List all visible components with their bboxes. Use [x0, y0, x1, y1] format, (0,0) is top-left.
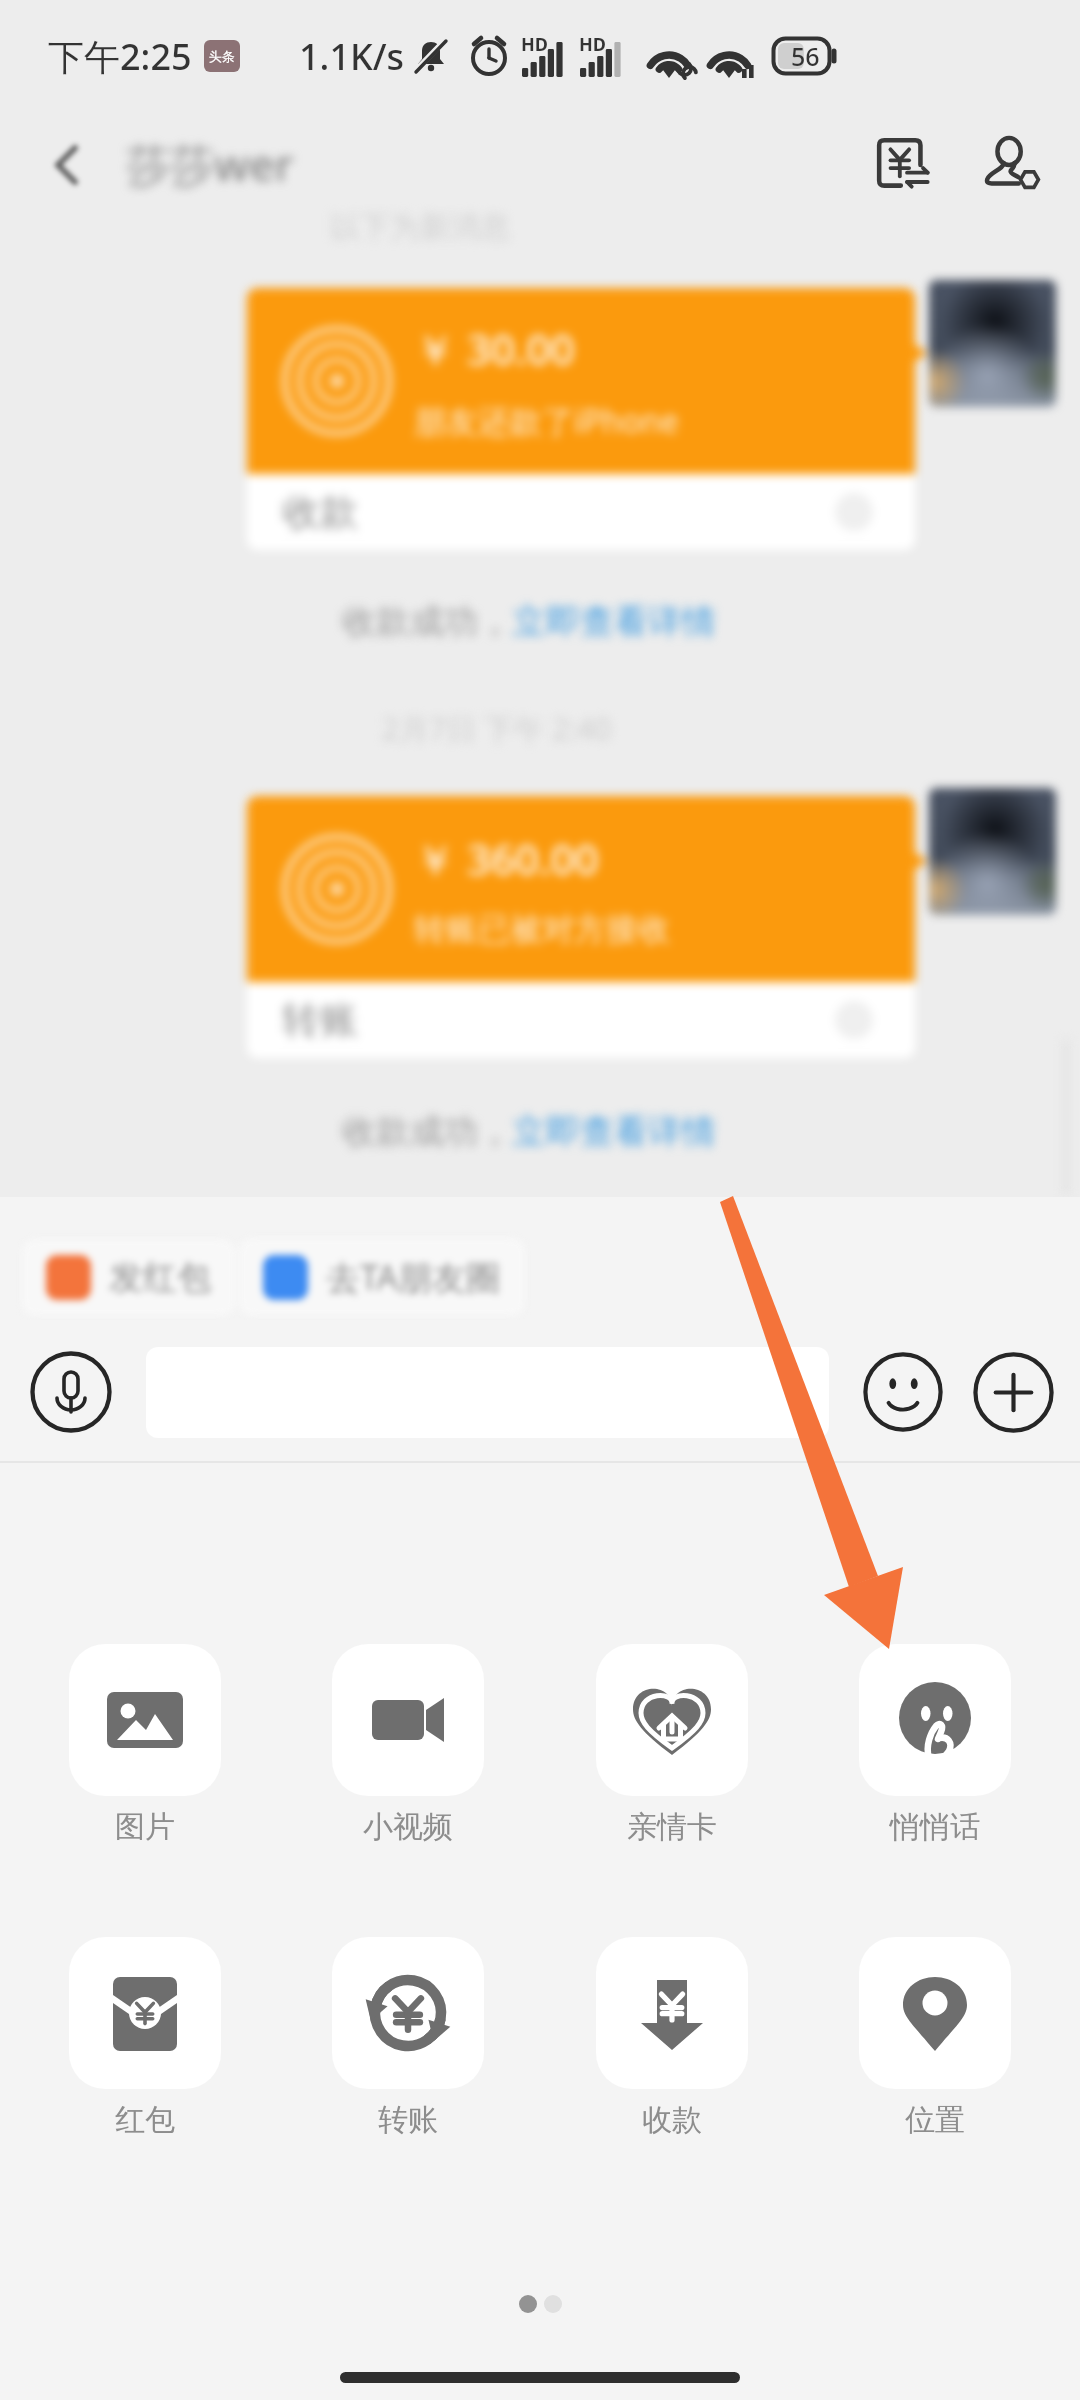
- button[interactable]: More options: [967, 1346, 1059, 1438]
- staticText: 立即查看详情: [512, 600, 716, 643]
- button[interactable]: 去TA朋友圈: [239, 1238, 525, 1316]
- button[interactable]: 发红包: [22, 1239, 235, 1316]
- staticText: 转账: [378, 2101, 438, 2139]
- staticText: 2月7日 下午 2:40: [382, 708, 612, 749]
- staticText: 下午2:25: [48, 32, 192, 81]
- staticText: 转账: [282, 996, 358, 1044]
- staticText: 以下为新消息: [330, 208, 510, 246]
- button[interactable]: 位置: [859, 1937, 1011, 2139]
- button[interactable]: Contact settings: [960, 114, 1064, 218]
- button[interactable]: ￥ 360.00: [247, 796, 915, 1058]
- staticText: 小视频: [363, 1808, 453, 1846]
- button[interactable]: 收款: [596, 1937, 748, 2139]
- button[interactable]: ￥ 30.00: [247, 288, 915, 550]
- button[interactable]: 小视频: [332, 1644, 484, 1846]
- staticText: 发红包: [109, 1256, 211, 1299]
- staticText: 朋友还款了iPhone: [414, 399, 679, 443]
- button[interactable]: Transfer money: [854, 114, 958, 218]
- button[interactable]: 图片: [69, 1644, 221, 1846]
- staticText: ￥ 30.00: [414, 320, 575, 377]
- button[interactable]: Voice input: [25, 1346, 117, 1438]
- staticText: 亲情卡: [627, 1808, 717, 1846]
- button[interactable]: Avatar: [929, 280, 1056, 407]
- button[interactable]: Back: [18, 116, 116, 214]
- staticText: 转账已被对方接收: [414, 909, 670, 949]
- button[interactable]: Avatar: [929, 788, 1056, 915]
- staticText: 收款: [282, 488, 358, 536]
- staticText: HD: [521, 32, 548, 57]
- staticText: 莎莎wer: [126, 134, 294, 194]
- staticText: 收款成功，: [342, 600, 512, 643]
- staticText: HD: [579, 32, 606, 57]
- button[interactable]: 立即查看详情: [512, 1110, 716, 1153]
- button[interactable]: 悄悄话: [859, 1644, 1011, 1846]
- button[interactable]: Emoji: [857, 1346, 949, 1438]
- staticText: 悄悄话: [890, 1808, 980, 1846]
- button[interactable]: 亲情卡: [596, 1644, 748, 1846]
- staticText: 1.1K/s: [299, 32, 405, 81]
- staticText: 头条: [209, 48, 235, 64]
- button[interactable]: 红包: [69, 1937, 221, 2139]
- button[interactable]: [146, 1347, 829, 1438]
- button[interactable]: 立即查看详情: [512, 600, 716, 643]
- staticText: 收款成功，: [342, 1110, 512, 1153]
- staticText: 立即查看详情: [512, 1110, 716, 1153]
- staticText: 图片: [115, 1808, 175, 1846]
- staticText: 收款: [642, 2101, 702, 2139]
- staticText: 56: [791, 39, 820, 73]
- button[interactable]: Page 2: [544, 2295, 562, 2313]
- staticText: 位置: [905, 2101, 965, 2139]
- button[interactable]: Page 1: [519, 2295, 537, 2313]
- button[interactable]: 转账: [332, 1937, 484, 2139]
- staticText: 红包: [115, 2101, 175, 2139]
- staticText: ￥ 360.00: [414, 830, 599, 887]
- staticText: 去TA朋友圈: [326, 1254, 501, 1300]
